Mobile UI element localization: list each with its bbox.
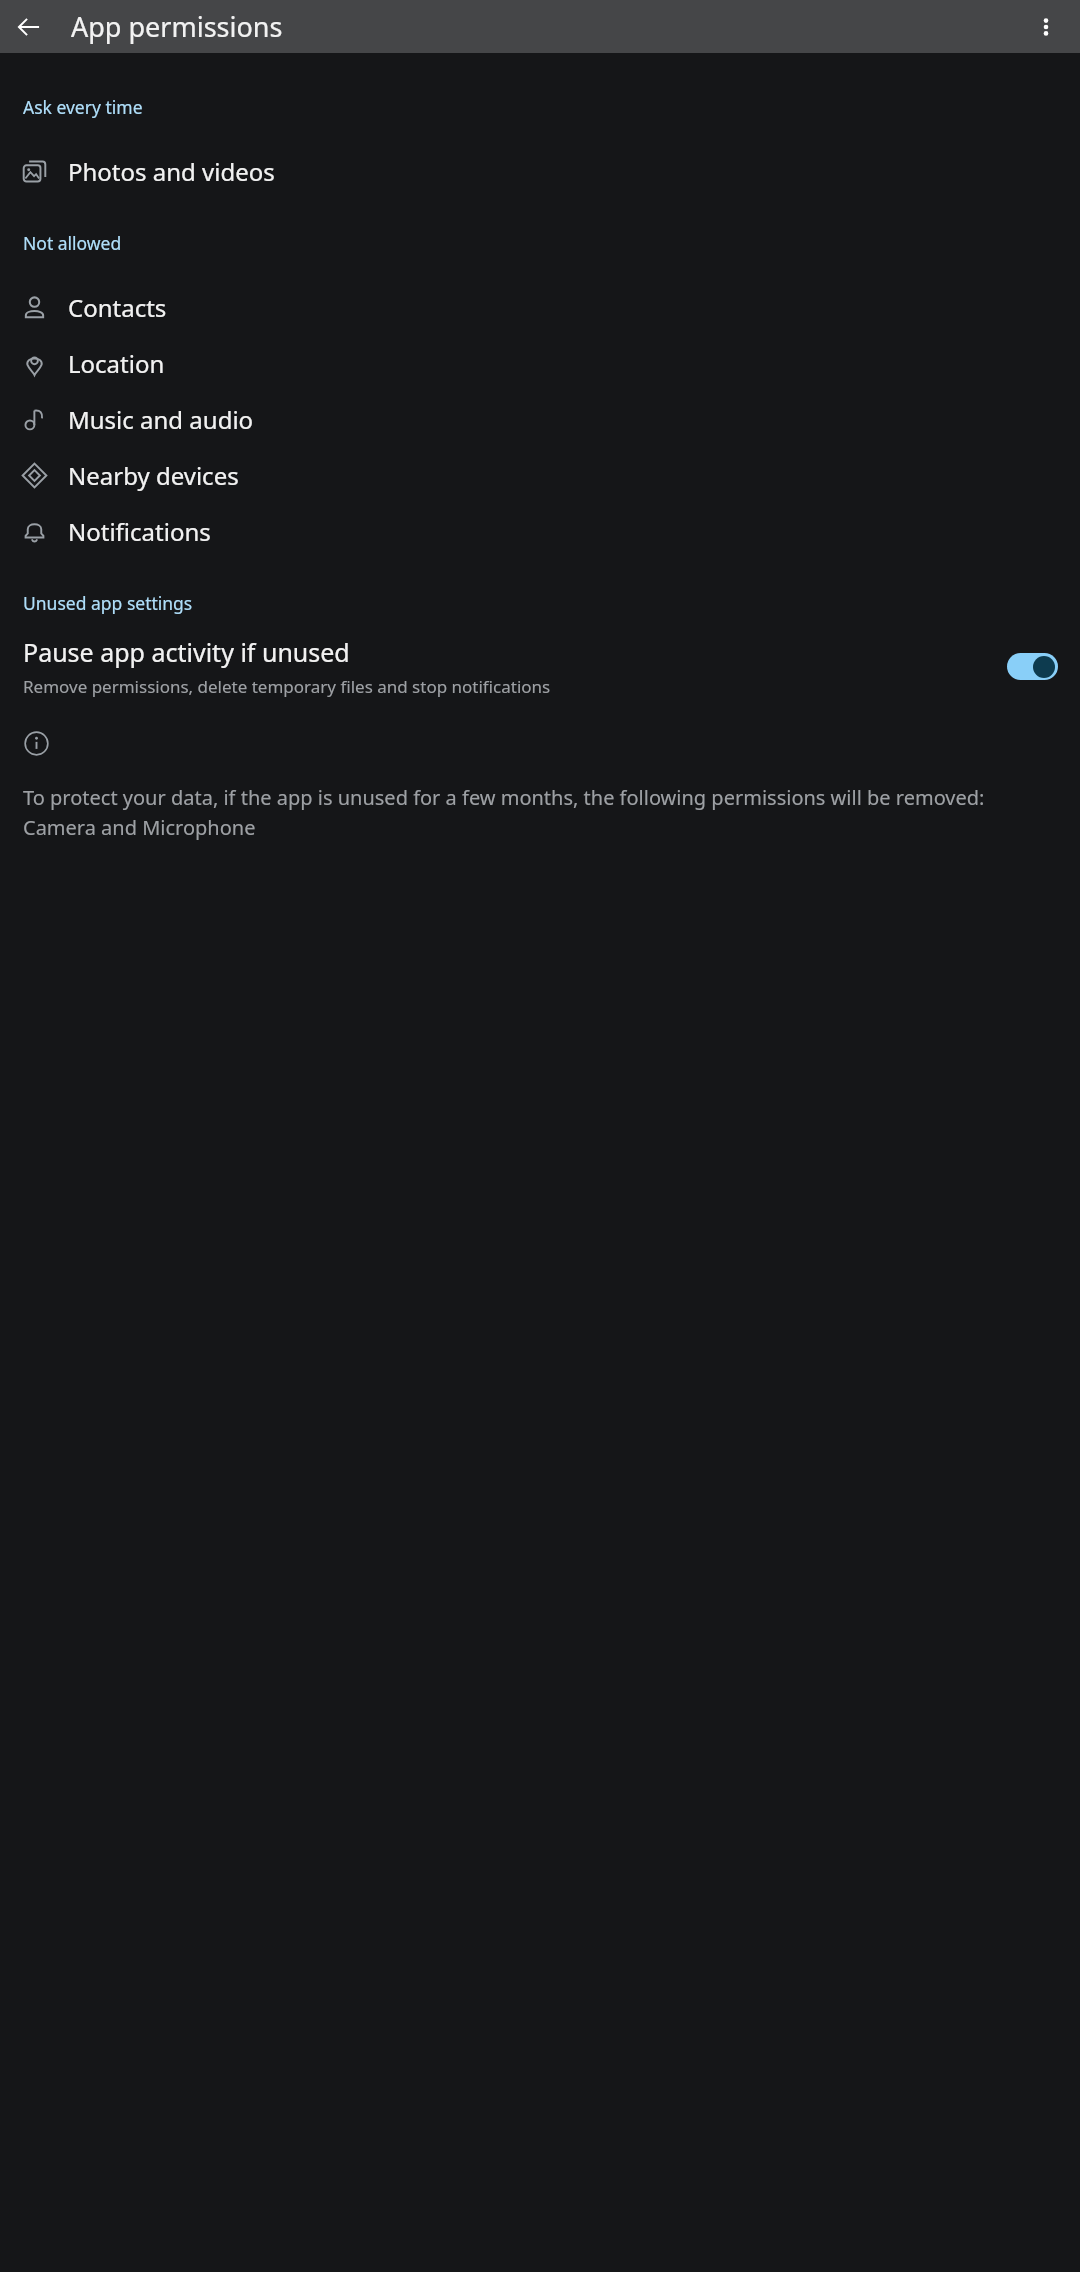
button[interactable]: Nearby devices: [0, 447, 1080, 503]
button[interactable]: Back: [10, 8, 48, 46]
staticText: Not allowed: [23, 231, 122, 255]
staticText: Contacts: [68, 291, 167, 324]
staticText: To protect your data, if the app is unus…: [23, 784, 1058, 841]
staticText: Unused app settings: [23, 591, 193, 615]
button[interactable]: Music and audio: [0, 391, 1080, 447]
button[interactable]: Contacts: [0, 279, 1080, 335]
staticText: Music and audio: [68, 403, 254, 436]
staticText: Nearby devices: [68, 459, 239, 492]
button[interactable]: Location: [0, 335, 1080, 391]
staticText: Pause app activity if unused: [23, 635, 350, 669]
staticText: Photos and videos: [68, 155, 275, 188]
staticText: Location: [68, 347, 165, 380]
button[interactable]: More options: [1026, 7, 1066, 47]
staticText: Remove permissions, delete temporary fil…: [23, 675, 551, 698]
button[interactable]: Pause app activity if unused: [0, 627, 1080, 706]
staticText: Notifications: [68, 515, 211, 548]
staticText: App permissions: [71, 8, 283, 45]
button[interactable]: Photos and videos: [0, 143, 1080, 199]
staticText: Ask every time: [23, 95, 143, 119]
button[interactable]: Notifications: [0, 503, 1080, 559]
